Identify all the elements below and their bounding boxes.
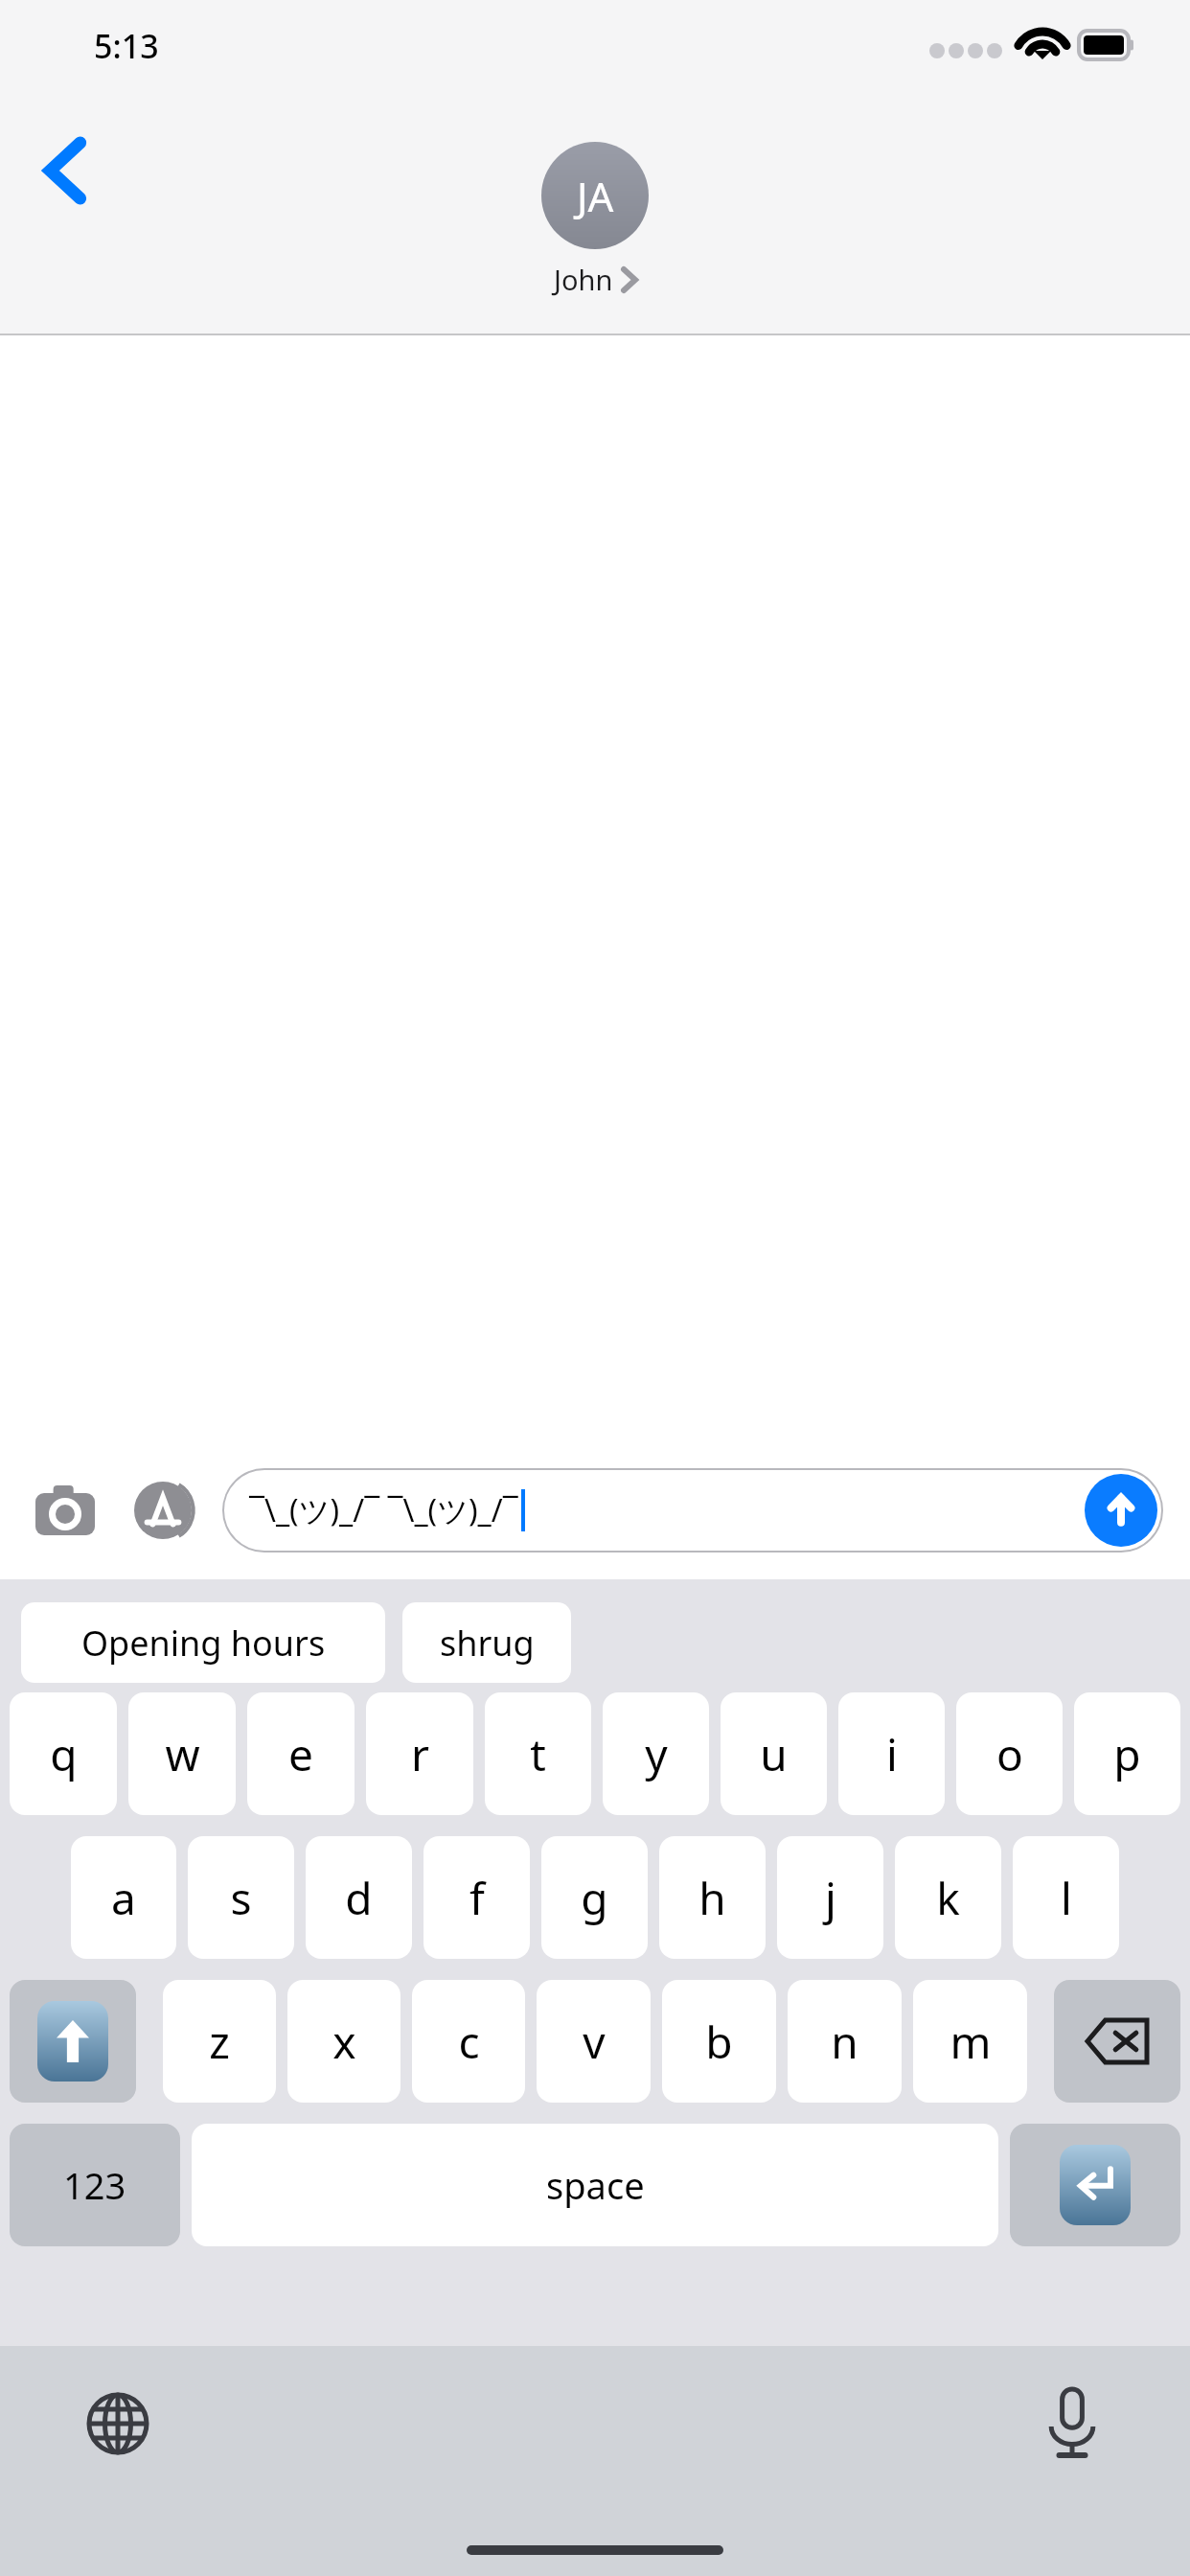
button[interactable]: y (603, 1692, 709, 1815)
staticText: space (546, 2160, 645, 2210)
button[interactable]: e (247, 1692, 355, 1815)
staticText: v (583, 2012, 606, 2072)
button[interactable]: Camera (27, 1472, 103, 1549)
staticText: e (288, 1724, 313, 1784)
button[interactable]: z (163, 1980, 276, 2103)
button[interactable]: Back (25, 130, 105, 211)
button[interactable]: u (721, 1692, 827, 1815)
button[interactable]: space (192, 2124, 998, 2246)
button[interactable]: Send (1085, 1474, 1157, 1547)
button[interactable]: Dictation (1029, 2380, 1115, 2467)
button[interactable]: JA (541, 142, 649, 298)
staticText: 123 (63, 2160, 126, 2210)
staticText: s (230, 1868, 252, 1928)
staticText: c (458, 2012, 480, 2072)
button[interactable]: shrug (402, 1602, 571, 1683)
staticText: d (345, 1868, 373, 1928)
staticText: a (111, 1868, 136, 1928)
button[interactable]: Opening hours (21, 1602, 385, 1683)
staticText: John (554, 261, 613, 298)
button[interactable]: g (541, 1836, 648, 1959)
button[interactable]: r (366, 1692, 473, 1815)
staticText: o (996, 1724, 1023, 1784)
staticText: b (705, 2012, 733, 2072)
button[interactable]: w (128, 1692, 236, 1815)
button[interactable]: p (1074, 1692, 1180, 1815)
staticText: r (411, 1724, 429, 1784)
button[interactable]: o (956, 1692, 1063, 1815)
button[interactable]: Shift (10, 1980, 136, 2103)
button[interactable]: q (10, 1692, 117, 1815)
staticText: ¯\_(ツ)_/¯ ¯\_(ツ)_/¯ (249, 1489, 518, 1531)
staticText: h (698, 1868, 726, 1928)
staticText: p (1113, 1724, 1141, 1784)
staticText: w (165, 1724, 200, 1784)
staticText: JA (577, 169, 614, 223)
button[interactable]: Backspace (1054, 1980, 1180, 2103)
button[interactable]: App Store (125, 1472, 201, 1549)
button[interactable]: ¯\_(ツ)_/¯ ¯\_(ツ)_/¯ (222, 1468, 1163, 1552)
staticText: u (760, 1724, 788, 1784)
button[interactable]: s (188, 1836, 294, 1959)
staticText: y (645, 1724, 668, 1784)
button[interactable]: d (306, 1836, 412, 1959)
staticText: q (50, 1724, 78, 1784)
staticText: g (581, 1868, 608, 1928)
button[interactable]: k (895, 1836, 1001, 1959)
button[interactable]: n (788, 1980, 902, 2103)
staticText: x (332, 2012, 356, 2072)
button[interactable]: Change keyboard (75, 2380, 161, 2467)
button[interactable]: a (71, 1836, 176, 1959)
button[interactable]: b (662, 1980, 776, 2103)
staticText: l (1061, 1868, 1072, 1928)
button[interactable]: m (913, 1980, 1027, 2103)
button[interactable]: l (1013, 1836, 1119, 1959)
button[interactable]: Return (1010, 2124, 1180, 2246)
button[interactable]: j (777, 1836, 883, 1959)
button[interactable]: t (485, 1692, 591, 1815)
staticText: i (886, 1724, 898, 1784)
button[interactable]: f (423, 1836, 530, 1959)
staticText: z (209, 2012, 230, 2072)
button[interactable]: h (659, 1836, 766, 1959)
button[interactable]: v (537, 1980, 651, 2103)
button[interactable]: x (287, 1980, 400, 2103)
button[interactable]: c (412, 1980, 525, 2103)
staticText: f (469, 1868, 485, 1928)
staticText: t (530, 1724, 546, 1784)
staticText: j (825, 1868, 836, 1928)
staticText: n (831, 2012, 858, 2072)
staticText: k (936, 1868, 960, 1928)
button[interactable]: 123 (10, 2124, 180, 2246)
button[interactable]: i (838, 1692, 945, 1815)
staticText: shrug (440, 1620, 535, 1667)
staticText: m (950, 2012, 992, 2072)
staticText: 5:13 (94, 24, 159, 68)
staticText: Opening hours (81, 1620, 326, 1667)
